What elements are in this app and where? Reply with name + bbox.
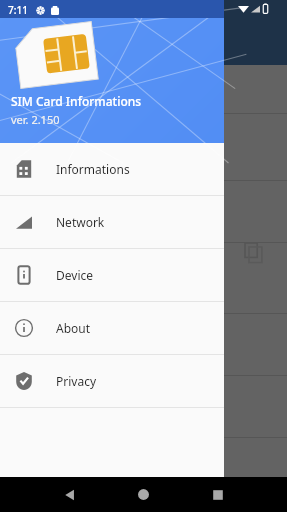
button[interactable]: Privacy [0,355,224,407]
button[interactable]: Device [0,249,224,301]
staticText: SIM Card Informations [11,93,142,109]
staticText: Network [56,214,105,230]
button[interactable]: Back [63,488,77,502]
staticText: Device [56,267,94,283]
staticText: Privacy [56,373,97,389]
staticText: 7:11 [8,3,28,17]
button[interactable]: Recents [212,489,224,501]
button[interactable]: About [0,302,224,354]
button[interactable]: Informations [0,143,224,195]
button[interactable]: Home [137,488,150,501]
staticText: About [56,320,91,336]
button[interactable]: Network [0,196,224,248]
staticText: ver. 2.150 [11,112,60,127]
staticText: Informations [56,161,130,177]
